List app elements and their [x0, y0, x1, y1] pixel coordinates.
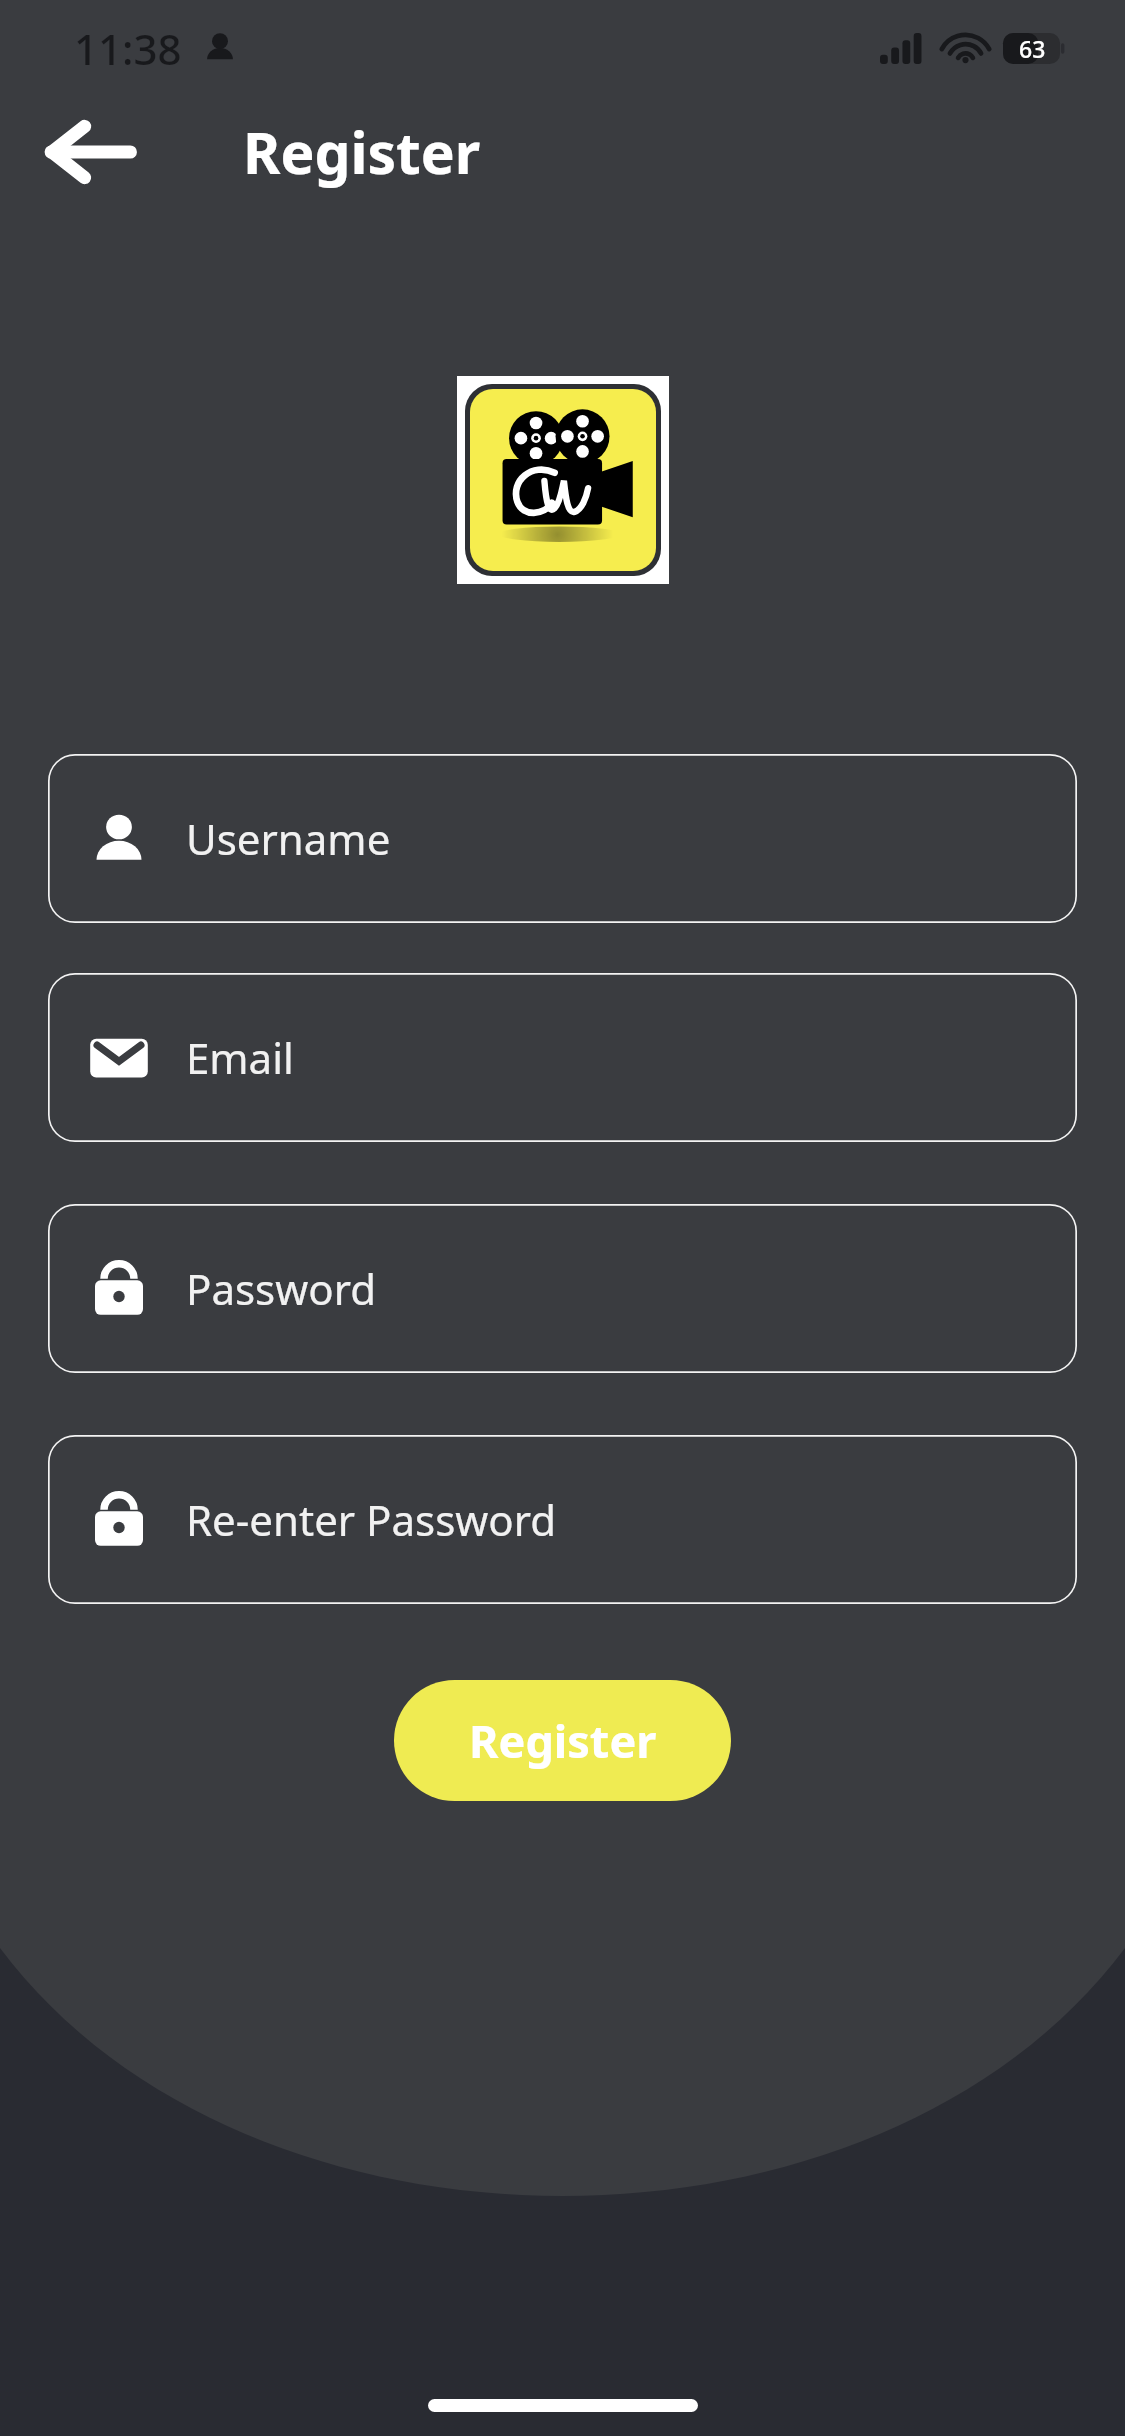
staticText: Username [186, 810, 391, 867]
button[interactable]: Re-enter Password [48, 1435, 1077, 1604]
staticText: Register [469, 1710, 657, 1771]
staticText: Register [243, 113, 481, 191]
staticText: Re-enter Password [186, 1491, 557, 1548]
button[interactable]: Password [48, 1204, 1077, 1373]
staticText: Password [186, 1260, 376, 1317]
button[interactable]: Back [30, 96, 148, 208]
staticText: Email [186, 1029, 294, 1086]
staticText: 11:38 [74, 20, 182, 77]
button[interactable]: Email [48, 973, 1077, 1142]
staticText: 63 [1019, 33, 1046, 64]
button[interactable]: Register [394, 1680, 731, 1801]
button[interactable]: Username [48, 754, 1077, 923]
